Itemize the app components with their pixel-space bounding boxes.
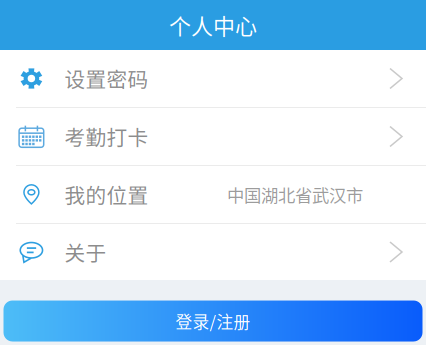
- staticText: 设置密码: [64, 63, 148, 93]
- staticText: 个人中心: [169, 9, 257, 41]
- button[interactable]: 登录/注册: [3, 300, 422, 341]
- button[interactable]: 考勤打卡: [0, 108, 426, 165]
- staticText: 关于: [64, 237, 106, 267]
- staticText: 登录/注册: [175, 309, 250, 333]
- button[interactable]: 关于: [0, 224, 426, 280]
- button[interactable]: 设置密码: [0, 50, 426, 107]
- staticText: 中国湖北省武汉市: [227, 182, 363, 207]
- staticText: 考勤打卡: [64, 121, 148, 151]
- staticText: 我的位置: [64, 179, 148, 209]
- button[interactable]: 我的位置: [0, 166, 426, 223]
